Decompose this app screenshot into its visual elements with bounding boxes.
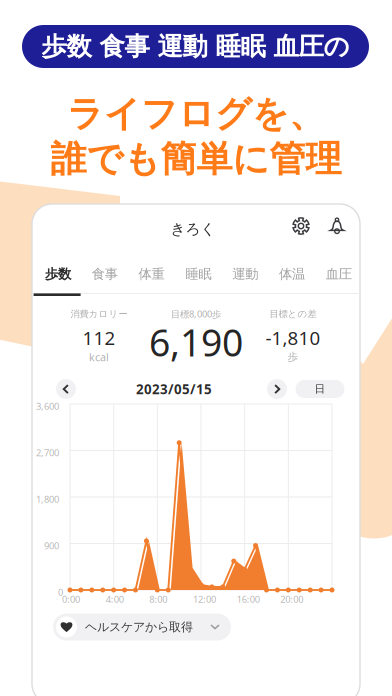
staticText: -1,810 (265, 325, 320, 350)
staticText: 目標との差 (269, 308, 316, 320)
staticText: 歩数 食事 運動 睡眠 血圧の (41, 31, 349, 62)
staticText: 1,800 (36, 493, 59, 505)
staticText: きろく (170, 220, 215, 238)
button[interactable]: 体温 (269, 247, 315, 301)
button[interactable]: 設定 (285, 210, 317, 242)
staticText: 歩数 (45, 266, 71, 282)
staticText: 16:00 (237, 593, 260, 605)
staticText: 4:00 (106, 593, 124, 605)
button[interactable]: 前の日 (56, 379, 76, 399)
staticText: 体重 (139, 266, 165, 282)
staticText: 6,190 (149, 317, 243, 367)
button[interactable]: 次の日 (267, 379, 287, 399)
staticText: 8:00 (149, 593, 167, 605)
staticText: 睡眠 (185, 266, 211, 282)
staticText: 誰でも簡単に管理 (50, 137, 341, 181)
staticText: 2023/05/15 (136, 380, 212, 398)
staticText: 12:00 (193, 593, 216, 605)
staticText: kcal (89, 350, 109, 364)
staticText: 2,700 (36, 446, 59, 459)
button[interactable]: 表示期間 (295, 380, 344, 398)
staticText: 3,600 (36, 400, 59, 412)
staticText: 運動 (232, 266, 258, 282)
staticText: 血圧 (326, 266, 352, 282)
staticText: 体温 (279, 266, 305, 282)
button[interactable]: 体重 (128, 247, 175, 301)
staticText: ライフログを、 (67, 92, 325, 136)
button[interactable]: 歩数 (35, 247, 81, 301)
button[interactable]: 睡眠 (175, 247, 222, 301)
staticText: 20:00 (280, 593, 303, 605)
staticText: 112 (82, 325, 115, 350)
staticText: 0 (58, 586, 63, 598)
staticText: 歩 (287, 350, 298, 363)
staticText: 食事 (92, 266, 118, 282)
staticText: 目標8,000歩 (171, 308, 221, 320)
button[interactable]: 食事 (81, 247, 128, 301)
button[interactable]: 通知 (321, 210, 353, 242)
staticText: 900 (44, 539, 59, 552)
button[interactable]: 運動 (222, 247, 269, 301)
staticText: 消費カロリー (70, 308, 127, 320)
button[interactable]: 血圧 (315, 247, 362, 301)
staticText: 日 (314, 382, 325, 395)
staticText: 0:00 (62, 593, 80, 605)
staticText: ヘルスケアから取得 (85, 620, 193, 634)
button[interactable]: ヘルスケアから取得 (53, 613, 231, 640)
